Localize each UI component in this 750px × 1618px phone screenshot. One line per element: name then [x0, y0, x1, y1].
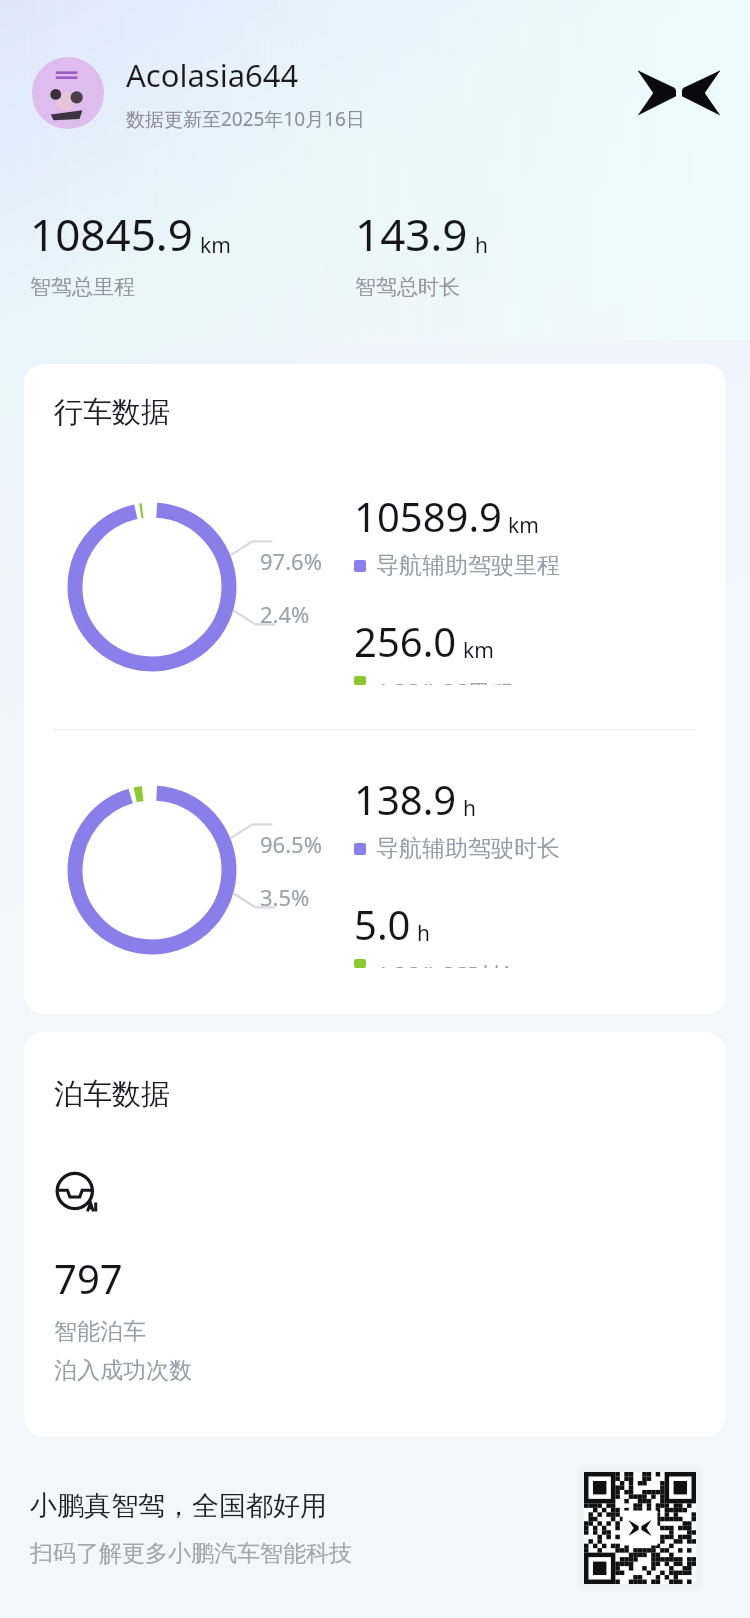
staticText: 泊车数据: [54, 1076, 170, 1113]
staticText: km: [463, 636, 494, 665]
staticText: 扫码了解更多小鹏汽车智能科技: [30, 1539, 352, 1568]
staticText: 97.6%: [260, 546, 322, 576]
staticText: 96.5%: [260, 829, 322, 859]
button[interactable]: 泊车数据: [24, 1032, 726, 1437]
staticText: h: [475, 231, 488, 260]
staticText: 10845.9: [30, 204, 193, 264]
button[interactable]: Profile avatar: [32, 57, 104, 129]
staticText: km: [508, 511, 539, 540]
staticText: 导航辅助驾驶时长: [376, 834, 560, 863]
staticText: Acolasia644: [126, 54, 299, 96]
staticText: 泊入成功次数: [54, 1356, 192, 1385]
staticText: 256.0: [354, 614, 457, 668]
staticText: h: [463, 794, 476, 823]
staticText: 数据更新至2025年10月16日: [126, 106, 365, 132]
staticText: km: [200, 231, 231, 260]
staticText: 小鹏真智驾，全国都好用: [30, 1489, 327, 1523]
staticText: 138.9: [354, 772, 457, 826]
staticText: 智能泊车: [54, 1317, 146, 1346]
button[interactable]: 行车数据: [24, 364, 726, 1014]
staticText: 143.9: [355, 204, 468, 264]
staticText: 智驾总时长: [355, 274, 460, 300]
button[interactable]: XPeng logo: [636, 65, 722, 121]
staticText: ACC/LCC里程: [376, 676, 514, 685]
staticText: 智驾总里程: [30, 274, 135, 300]
staticText: 797: [54, 1251, 123, 1305]
staticText: h: [417, 919, 430, 948]
staticText: 2.4%: [260, 599, 310, 629]
staticText: 10589.9: [354, 489, 502, 543]
staticText: 3.5%: [260, 882, 310, 912]
button[interactable]: QR code: [578, 1466, 702, 1590]
staticText: 导航辅助驾驶里程: [376, 551, 560, 580]
staticText: 5.0: [354, 897, 411, 951]
staticText: 行车数据: [54, 394, 170, 431]
staticText: ACC/LCC时长: [376, 959, 514, 968]
